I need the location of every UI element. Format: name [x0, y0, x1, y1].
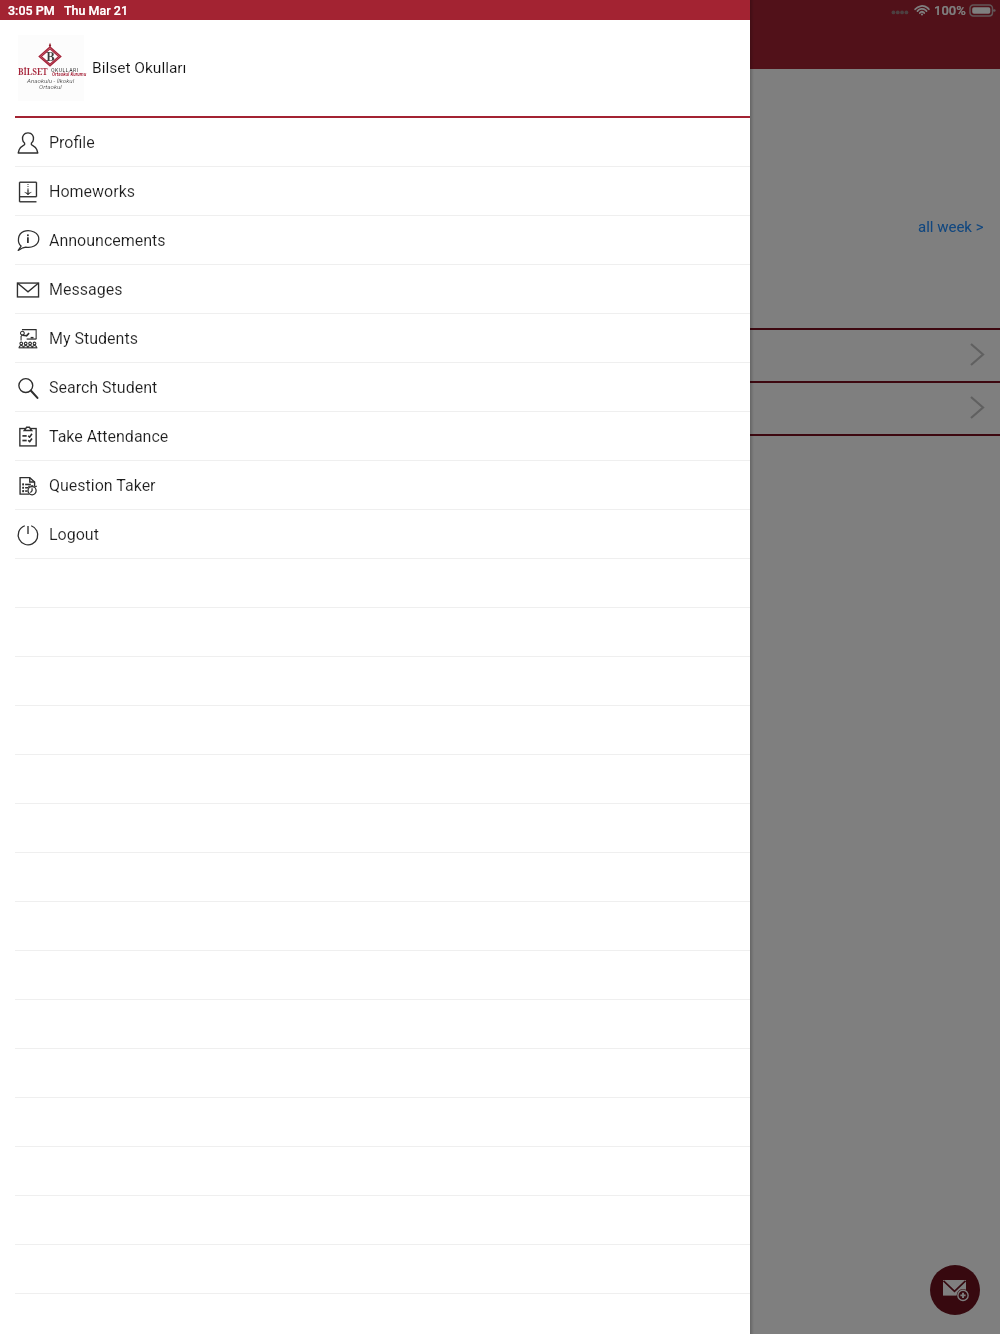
button[interactable]: Announcements: [0, 216, 750, 265]
staticText: My Students: [49, 329, 138, 348]
staticText: Announcements: [49, 231, 166, 250]
staticText: Take Attendance: [49, 427, 169, 446]
staticText: Bilset Okulları: [92, 59, 187, 77]
button[interactable]: Logout: [0, 510, 750, 559]
button[interactable]: My Students: [0, 314, 750, 363]
button[interactable]: Search Student: [0, 363, 750, 412]
staticText: Profile: [49, 133, 95, 152]
button[interactable]: Messages: [0, 265, 750, 314]
staticText: BİLSET: [18, 66, 48, 77]
button[interactable]: [0, 328, 1000, 381]
button[interactable]: Close navigation drawer: [750, 0, 1000, 1334]
staticText: Ortaokul Kurumu: [52, 72, 87, 77]
staticText: Homeworks: [49, 182, 135, 201]
staticText: OKULLARI: [51, 67, 79, 73]
button[interactable]: [0, 381, 1000, 434]
staticText: Anaokulu - İlkokul: [27, 77, 75, 84]
staticText: Logout: [49, 525, 99, 544]
staticText: Search Student: [49, 378, 158, 397]
staticText: Ortaokul: [39, 83, 62, 90]
button[interactable]: Question Taker: [0, 461, 750, 510]
button[interactable]: Take Attendance: [0, 412, 750, 461]
button[interactable]: New message: [930, 1265, 980, 1315]
staticText: 3:05 PM: [8, 3, 55, 18]
button[interactable]: Homeworks: [0, 167, 750, 216]
staticText: Messages: [49, 280, 123, 299]
staticText: all week >: [918, 218, 984, 236]
staticText: 100%: [934, 3, 966, 18]
button[interactable]: all week >: [914, 214, 988, 240]
button[interactable]: Profile: [0, 118, 750, 167]
staticText: Thu Mar 21: [64, 3, 129, 18]
staticText: Question Taker: [49, 476, 156, 495]
staticText: B: [46, 47, 55, 65]
